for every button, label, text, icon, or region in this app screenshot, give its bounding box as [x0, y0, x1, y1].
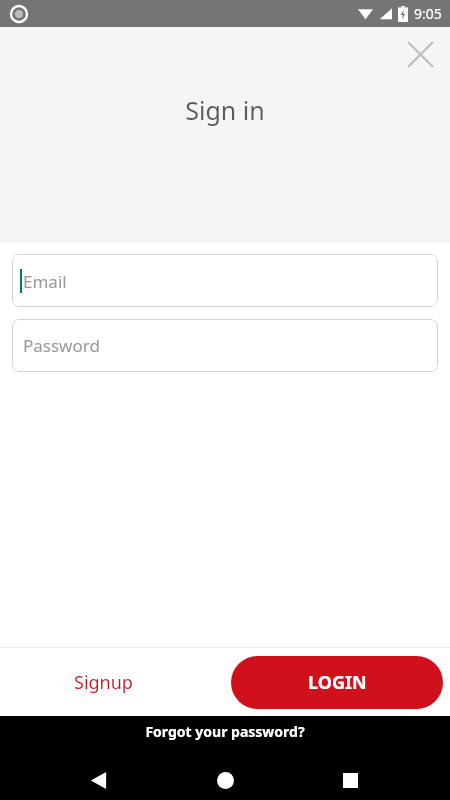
button[interactable]: Email — [12, 254, 438, 307]
staticText: Signup — [74, 670, 133, 695]
button[interactable]: Password — [12, 319, 438, 372]
staticText: LOGIN — [308, 670, 367, 695]
staticText: Sign in — [185, 93, 265, 127]
button[interactable]: Forgot your password? — [133, 716, 317, 747]
staticText: Password — [23, 334, 100, 357]
button[interactable]: Recent apps — [326, 756, 374, 800]
staticText: Forgot your password? — [145, 722, 305, 741]
staticText: 9:05 — [414, 4, 442, 23]
button[interactable]: Back — [74, 756, 122, 800]
button[interactable]: Signup — [60, 660, 147, 705]
button[interactable]: Close — [396, 30, 444, 78]
staticText: Email — [23, 270, 67, 293]
button[interactable]: LOGIN — [231, 656, 443, 709]
button[interactable]: Home — [201, 756, 249, 800]
